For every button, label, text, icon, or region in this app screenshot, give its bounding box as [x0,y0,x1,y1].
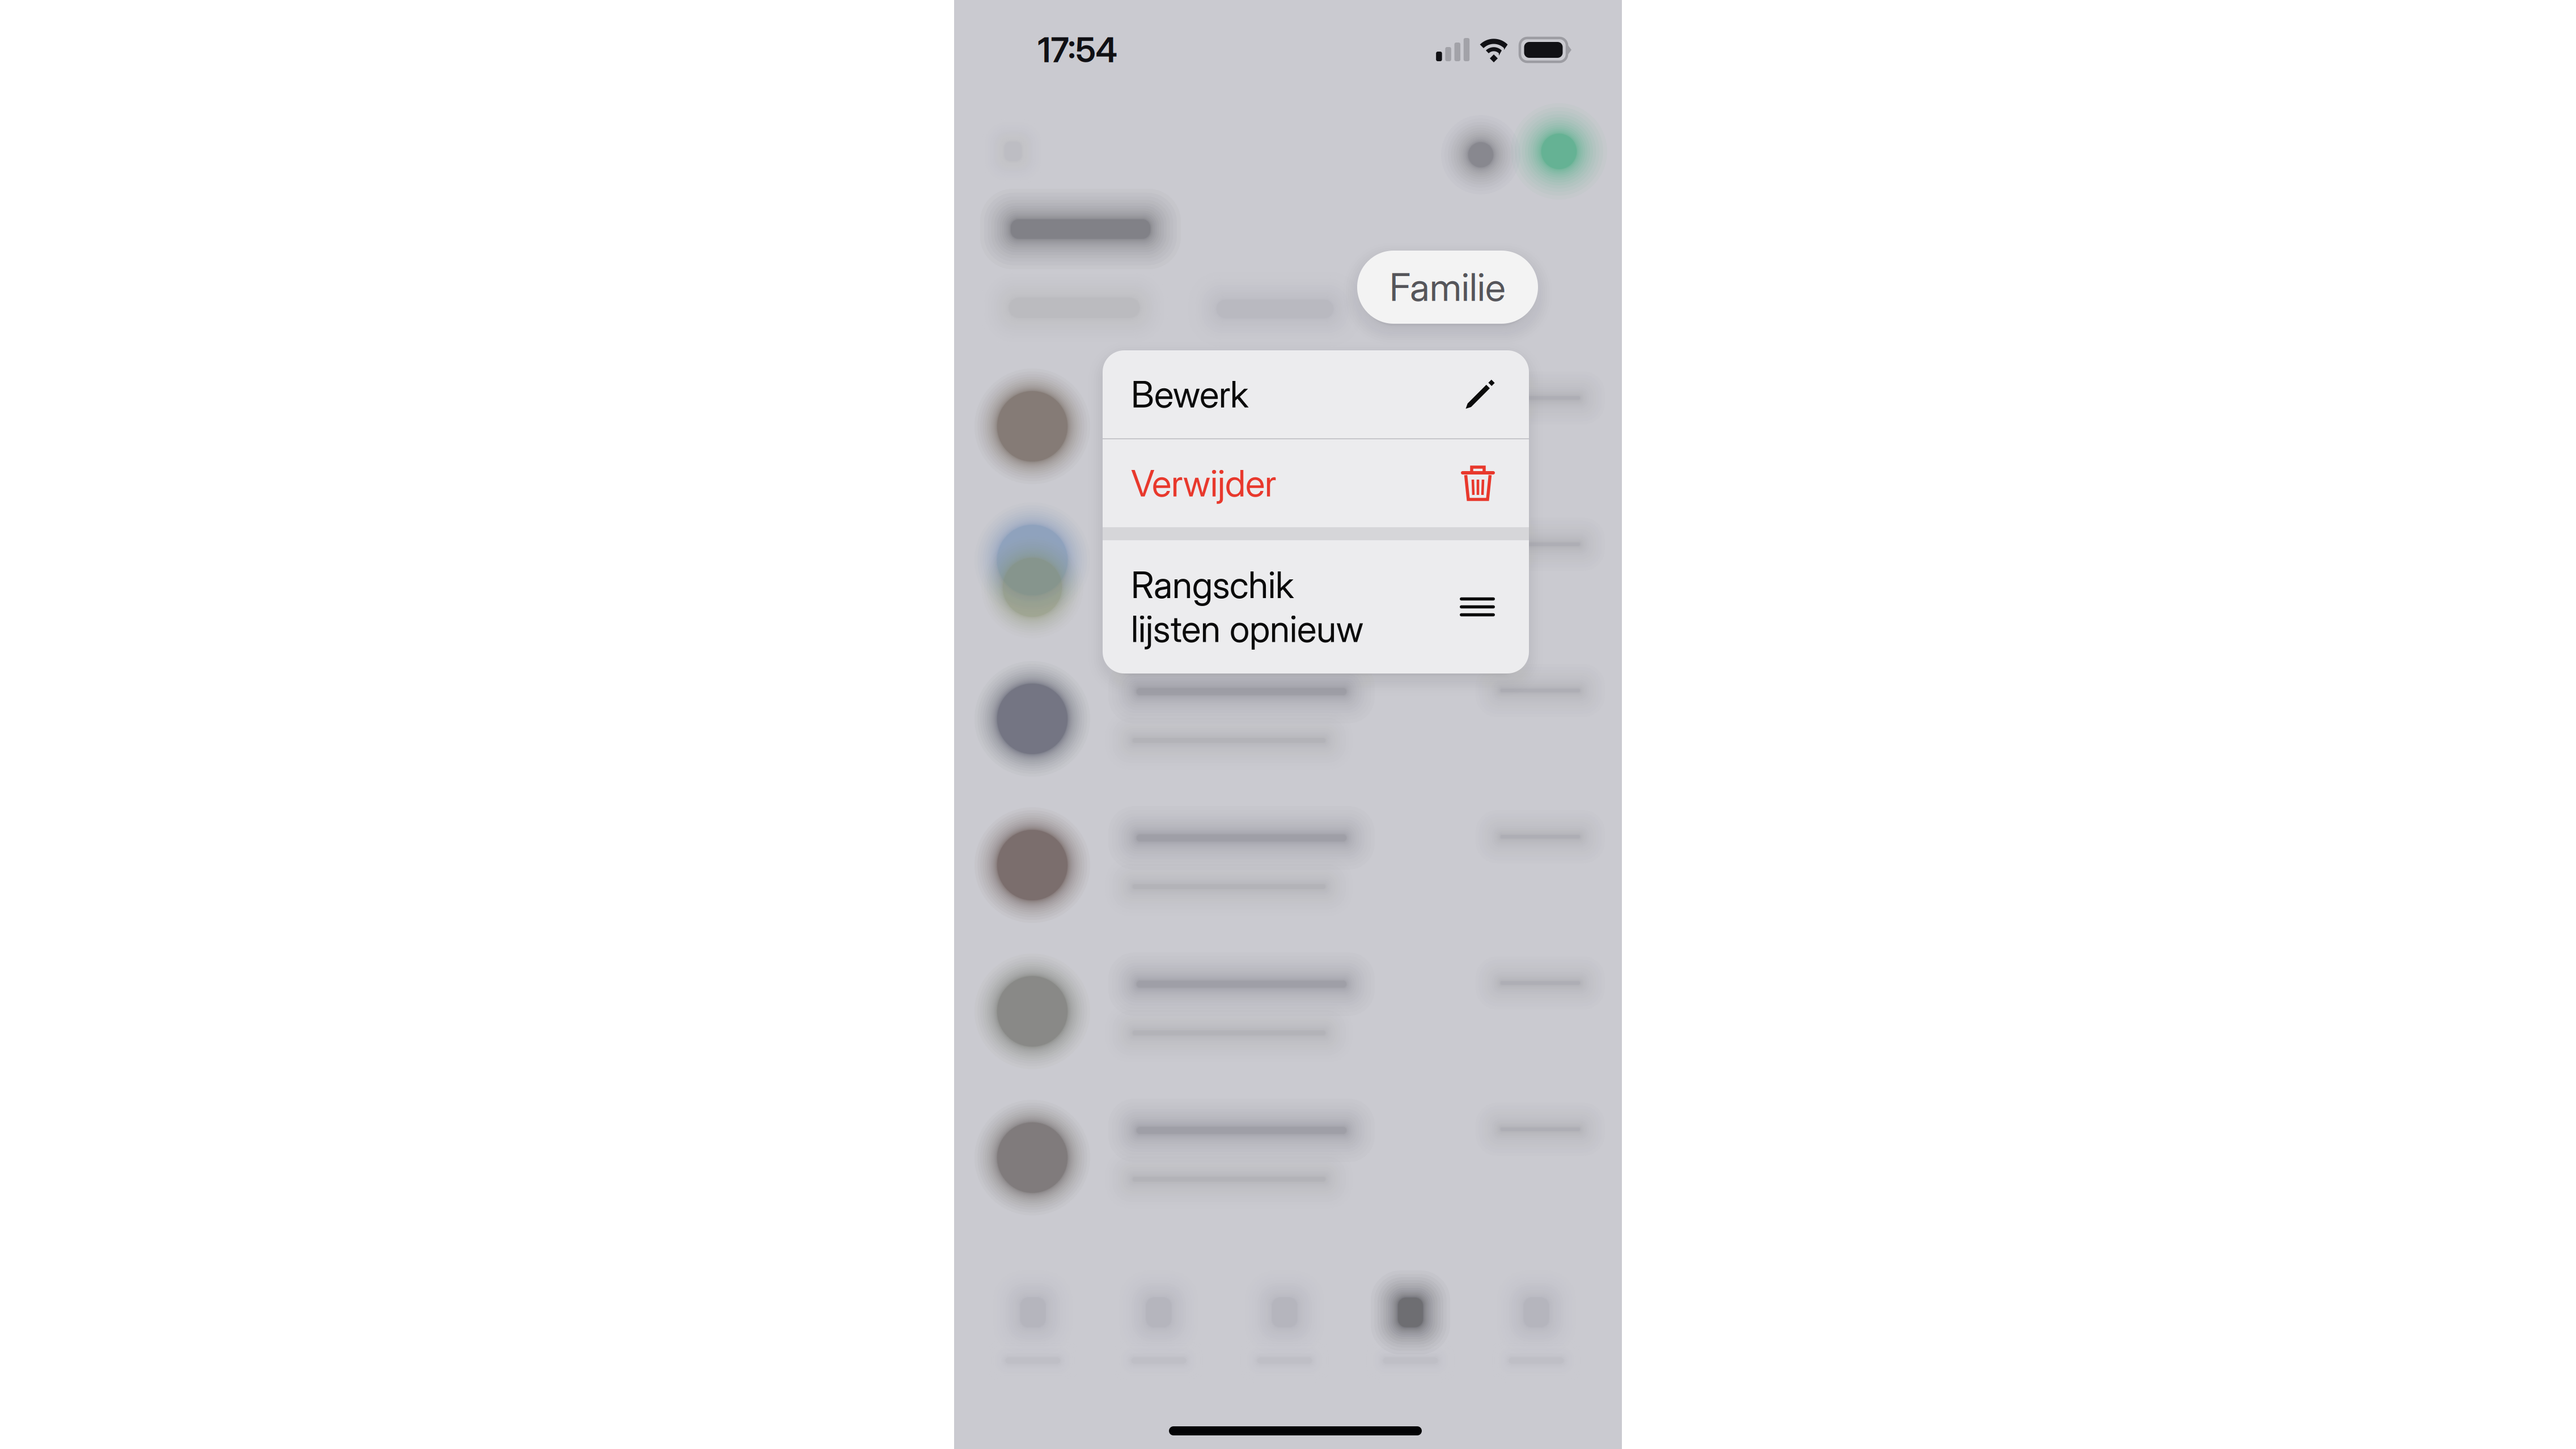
button[interactable]: Chats [1348,1284,1473,1380]
button[interactable]: Meer opties [1441,115,1520,194]
staticText: Rangschik [1131,563,1294,607]
staticText: Familie [1389,264,1506,310]
button[interactable]: Ongelezen [1188,272,1362,346]
button[interactable]: Chat [954,1084,1622,1231]
staticText: lijsten opnieuw [1131,607,1363,651]
button[interactable]: Chat [954,646,1622,792]
button[interactable]: Chat [954,353,1622,499]
staticText: Verwijder [1131,461,1277,505]
button[interactable]: Nieuwe chat [1511,103,1607,200]
staticText: 17:54 [1038,29,1118,70]
button[interactable]: Zoek [982,119,1044,184]
button[interactable]: Updates [970,1284,1096,1380]
button[interactable]: Instellingen [1473,1284,1599,1380]
button[interactable]: Oproepen [1096,1284,1222,1380]
button[interactable]: Familie [1357,251,1538,324]
button[interactable]: Rangschik [1103,540,1529,673]
button[interactable]: Bewerk [1103,350,1529,438]
button[interactable]: Alles [981,270,1168,346]
button[interactable]: Chat [954,792,1622,938]
button[interactable]: Chat [954,938,1622,1084]
button[interactable]: Chat [954,499,1622,646]
button[interactable]: Verwijder [1103,439,1529,527]
button[interactable]: Communities [1222,1284,1348,1380]
staticText: Bewerk [1131,372,1248,416]
